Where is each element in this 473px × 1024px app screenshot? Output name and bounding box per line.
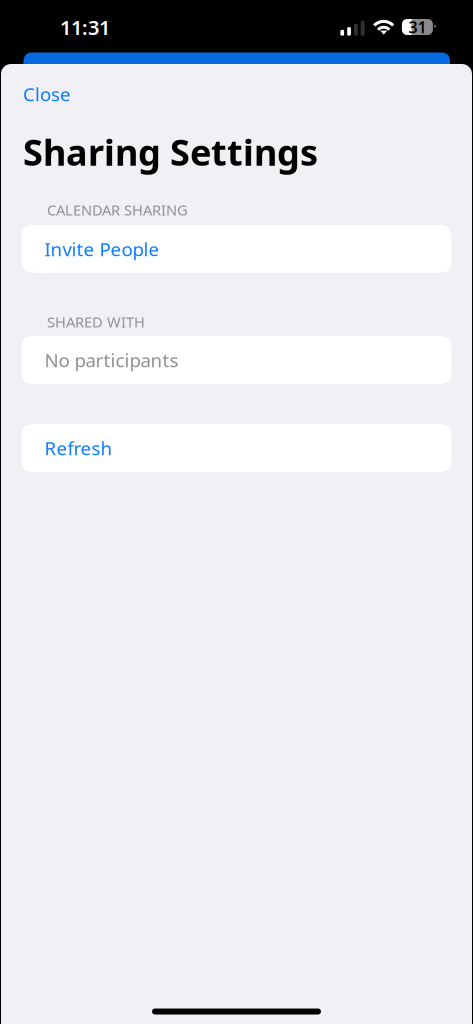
staticText: Invite People bbox=[44, 237, 159, 261]
staticText: CALENDAR SHARING bbox=[47, 200, 188, 219]
staticText: Close bbox=[23, 82, 71, 106]
staticText: 31 bbox=[408, 16, 426, 38]
staticText: SHARED WITH bbox=[47, 312, 145, 331]
staticText: No participants bbox=[44, 348, 178, 372]
button[interactable]: Invite People bbox=[21, 225, 451, 273]
staticText: 11:31 bbox=[60, 14, 110, 41]
button[interactable]: Refresh bbox=[21, 424, 451, 472]
staticText: Refresh bbox=[44, 436, 112, 460]
staticText: Sharing Settings bbox=[23, 128, 318, 176]
button[interactable]: Close bbox=[13, 72, 83, 116]
button[interactable]: No participants bbox=[21, 336, 451, 384]
